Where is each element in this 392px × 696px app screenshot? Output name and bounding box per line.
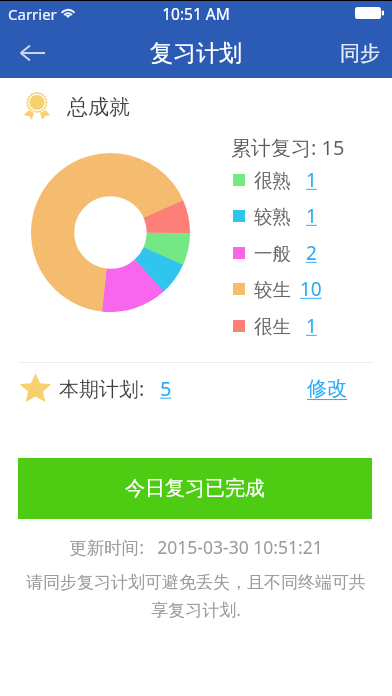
staticText: 一般 xyxy=(254,242,291,265)
staticText: 今日复习已完成 xyxy=(125,476,265,501)
button[interactable]: Back xyxy=(0,28,64,78)
button[interactable]: 较生 xyxy=(233,275,325,303)
button[interactable]: 很生 xyxy=(233,312,325,340)
staticText: 同步 xyxy=(340,41,380,66)
staticText: 较熟 xyxy=(254,205,291,228)
button[interactable]: 今日复习已完成 xyxy=(18,458,372,519)
staticText: Carrier xyxy=(8,4,57,24)
button[interactable]: 较熟 xyxy=(233,202,325,230)
staticText: 更新时间: 2015-03-30 10:51:21 xyxy=(0,535,392,559)
staticText: 本期计划: xyxy=(59,375,160,402)
button[interactable]: 修改 xyxy=(307,376,347,401)
staticText: 1 xyxy=(306,313,317,339)
staticText: 请同步复习计划可避免丢失，且不同终端可共享复习计划. xyxy=(25,572,367,621)
staticText: 2 xyxy=(306,240,317,266)
staticText: 较生 xyxy=(254,278,291,301)
button[interactable]: 同步 xyxy=(328,28,392,78)
staticText: 累计复习: 15 xyxy=(231,134,345,161)
staticText: 1 xyxy=(306,167,317,193)
staticText: 修改 xyxy=(307,376,347,401)
staticText: 很熟 xyxy=(254,169,291,192)
button[interactable]: 一般 xyxy=(233,239,325,267)
staticText: 10:51 AM xyxy=(0,3,392,24)
button[interactable]: 很熟 xyxy=(233,166,325,194)
staticText: 10 xyxy=(300,276,322,302)
staticText: 1 xyxy=(306,203,317,229)
staticText: 很生 xyxy=(254,315,291,338)
staticText: 5 xyxy=(160,375,172,402)
staticText: 复习计划 xyxy=(150,39,242,68)
staticText: 总成就 xyxy=(67,94,130,120)
button[interactable]: 5 xyxy=(160,375,172,402)
